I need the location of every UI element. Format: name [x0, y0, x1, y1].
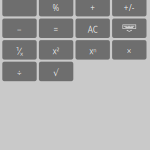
staticText: ×: [127, 46, 132, 56]
staticText: xⁿ: [89, 46, 96, 56]
staticText: %: [53, 3, 60, 13]
staticText: −: [17, 24, 22, 35]
button[interactable]: minus: [2, 18, 37, 38]
staticText: AC: [88, 24, 98, 35]
button[interactable]: multiply: [112, 40, 146, 60]
staticText: x²: [53, 46, 60, 56]
button[interactable]: equals: [39, 18, 73, 38]
button[interactable]: all clear: [75, 18, 110, 38]
button[interactable]: plus: [75, 0, 110, 16]
staticText: =: [54, 24, 59, 35]
button[interactable]: square root: [39, 62, 73, 81]
button[interactable]: percent: [39, 0, 73, 16]
staticText: +: [90, 3, 95, 13]
staticText: ¹⁄ₓ: [16, 45, 23, 57]
button[interactable]: Hide keyboard: [112, 18, 146, 38]
button[interactable]: divide: [2, 62, 37, 81]
button[interactable]: x to the n: [75, 40, 110, 60]
button[interactable]: reciprocal: [2, 40, 37, 60]
button[interactable]: plus minus: [112, 0, 146, 16]
staticText: ÷: [17, 67, 22, 78]
staticText: √: [53, 67, 59, 78]
staticText: +/-: [124, 3, 135, 13]
button[interactable]: x squared: [39, 40, 73, 60]
button[interactable]: key: [2, 0, 37, 16]
